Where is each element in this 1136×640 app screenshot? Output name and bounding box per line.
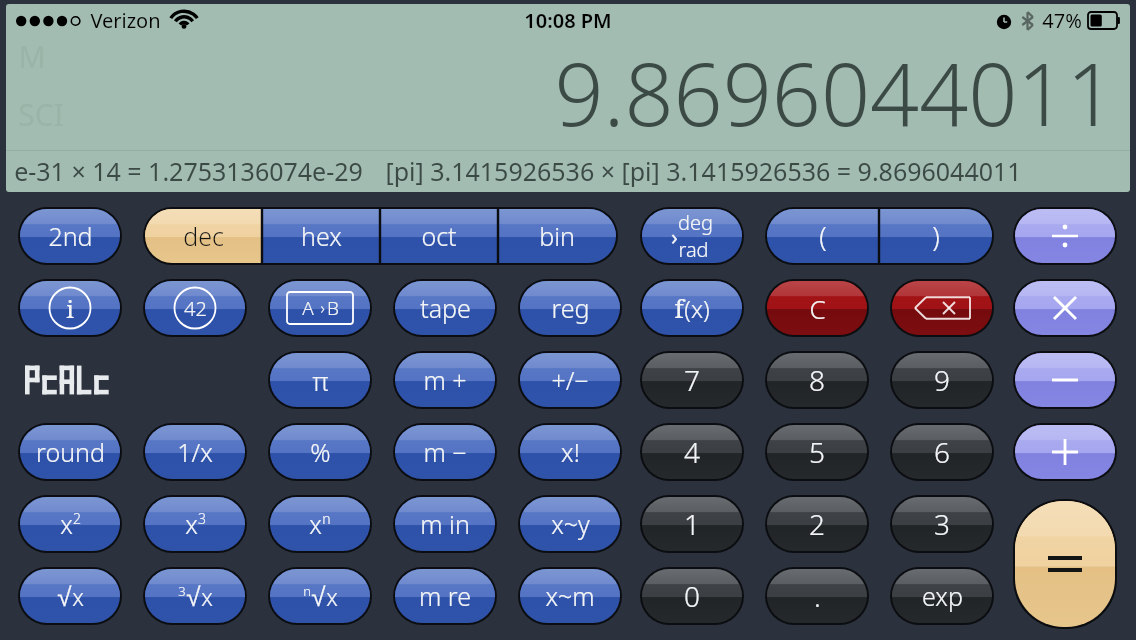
button[interactable]: x~y [520,497,620,551]
button[interactable]: % [270,425,370,479]
staticText: M [18,36,46,77]
button[interactable]: 4 [642,425,742,479]
staticText: e-31 × 14 = 1.2753136074e-29 [14,154,363,188]
button[interactable]: x [270,497,370,551]
staticText: f [674,291,684,325]
staticText: tape [420,291,471,325]
staticText: √ [57,582,72,611]
staticText: 3 [934,505,950,543]
staticText: rad [678,236,709,263]
staticText: 6 [934,433,950,471]
button[interactable]: 8 [767,353,867,407]
button[interactable]: 2 [767,497,867,551]
staticText: i [66,292,74,325]
button[interactable]: tape [395,281,495,335]
button[interactable]: dec [145,209,262,263]
button[interactable]: Convert A to B [270,281,370,335]
staticText: 4 [684,433,700,471]
button[interactable]: Backspace [892,281,992,335]
button[interactable]: ( [767,209,879,263]
staticText: 10:08 PM [524,7,612,34]
button[interactable]: ) [879,209,992,263]
staticText: hex [301,219,342,253]
staticText: x [326,581,338,612]
staticText: x! [561,435,580,469]
staticText: 8 [809,361,825,399]
button[interactable]: f [642,281,742,335]
staticText: n [303,582,311,600]
button[interactable]: reg [520,281,620,335]
staticText: exp [922,579,963,613]
staticText: x [60,507,73,541]
button[interactable]: 1 [642,497,742,551]
staticText: 3 [198,509,206,528]
staticText: m in [420,507,470,541]
button[interactable]: m + [395,353,495,407]
staticText: 47% [1042,7,1082,34]
button[interactable]: C [767,281,867,335]
staticText: A [302,295,314,321]
staticText: dec [183,219,224,253]
button[interactable]: 5 [767,425,867,479]
staticText: 0 [684,577,700,615]
button[interactable]: Divide [1015,209,1115,263]
button[interactable]: m re [395,569,495,623]
staticText: 2nd [48,219,93,253]
button[interactable]: π [270,353,370,407]
staticText: deg [678,209,713,236]
button[interactable]: 6 [892,425,992,479]
staticText: SCI [18,94,64,135]
staticText: › [671,221,678,251]
staticText: x [72,581,84,612]
button[interactable]: 3 [892,497,992,551]
staticText: 1/x [177,435,213,469]
button[interactable]: bin [498,209,616,263]
button[interactable]: 7 [642,353,742,407]
button[interactable]: Add [1015,425,1115,479]
staticText: x [309,507,322,541]
staticText: +/− [551,363,589,397]
button[interactable]: 2nd [20,209,120,263]
button[interactable]: Subtract [1015,353,1115,407]
button[interactable]: m − [395,425,495,479]
button[interactable]: x [20,497,120,551]
button[interactable]: n [270,569,370,623]
button[interactable]: hex [262,209,380,263]
staticText: 3 [178,582,186,600]
button[interactable]: Info [20,281,120,335]
staticText: 42 [184,295,207,322]
staticText: reg [551,291,590,325]
button[interactable]: oct [380,209,498,263]
staticText: x [201,581,213,612]
button[interactable]: . [767,569,867,623]
button[interactable]: 3 [145,569,245,623]
staticText: m re [419,579,471,613]
button[interactable]: exp [892,569,992,623]
button[interactable]: √ [20,569,120,623]
button[interactable]: › [642,209,742,263]
staticText: ) [932,218,940,255]
button[interactable]: round [20,425,120,479]
button[interactable]: x [145,497,245,551]
button[interactable]: x! [520,425,620,479]
button[interactable]: Constants [145,281,245,335]
staticText: 9 [934,361,950,399]
button[interactable]: Equals [1015,501,1115,627]
staticText: x [185,507,198,541]
staticText: m − [423,435,467,469]
button[interactable]: Multiply [1015,281,1115,335]
staticText: n [322,509,331,528]
button[interactable]: m in [395,497,495,551]
button[interactable]: 9 [892,353,992,407]
button[interactable]: 0 [642,569,742,623]
staticText: (x) [684,292,710,325]
staticText: % [310,435,331,469]
staticText: 9.8696044011 [554,34,1116,148]
button[interactable]: x~m [520,569,620,623]
button[interactable]: +/− [520,353,620,407]
staticText: √ [186,582,201,611]
button[interactable]: 1/x [145,425,245,479]
staticText: √ [311,582,326,611]
staticText: x~y [551,507,590,541]
staticText: π [312,363,329,398]
